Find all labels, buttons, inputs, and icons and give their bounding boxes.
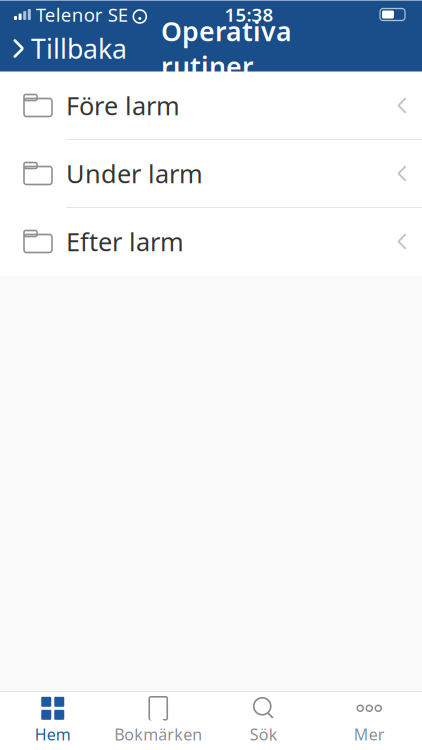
staticText: Efter larm (66, 225, 184, 258)
button[interactable]: Tillbaka (0, 25, 127, 72)
staticText: Mer (354, 724, 385, 745)
staticText: Under larm (66, 157, 203, 190)
staticText: Hem (35, 724, 71, 745)
button[interactable]: Före larm (0, 72, 422, 140)
button[interactable]: Efter larm (0, 208, 422, 276)
staticText: Tillbaka (31, 31, 127, 66)
staticText: Telenor SE (36, 2, 128, 27)
button[interactable]: Hem (0, 692, 105, 749)
button[interactable]: Bokmärken (105, 692, 211, 749)
staticText: Bokmärken (114, 724, 202, 745)
staticText: Operativa rutiner (161, 13, 292, 84)
staticText: Före larm (66, 89, 180, 122)
button[interactable]: Sök (211, 692, 316, 749)
button[interactable]: Under larm (0, 140, 422, 208)
staticText: 15:38 (224, 2, 273, 27)
staticText: Sök (250, 724, 278, 745)
button[interactable]: Mer (316, 692, 422, 749)
